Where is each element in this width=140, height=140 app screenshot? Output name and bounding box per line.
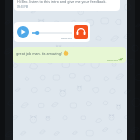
button[interactable]: Play voice message (14, 22, 90, 42)
staticText: 09:53 PM (107, 58, 118, 61)
staticText: 09:52 PM (61, 36, 72, 39)
staticText: great job man. its amazing! (16, 51, 62, 56)
staticText: 09:50 PM (17, 5, 29, 9)
button[interactable]: Play voice message (17, 26, 29, 38)
button[interactable]: Listen with headphones (74, 25, 88, 39)
staticText: Hi Bro. listen to this intro and give me… (17, 0, 107, 4)
button[interactable]: great job man. its amazing! (13, 47, 126, 63)
button[interactable]: Hi Bro. listen to this intro and give me… (14, 0, 120, 11)
